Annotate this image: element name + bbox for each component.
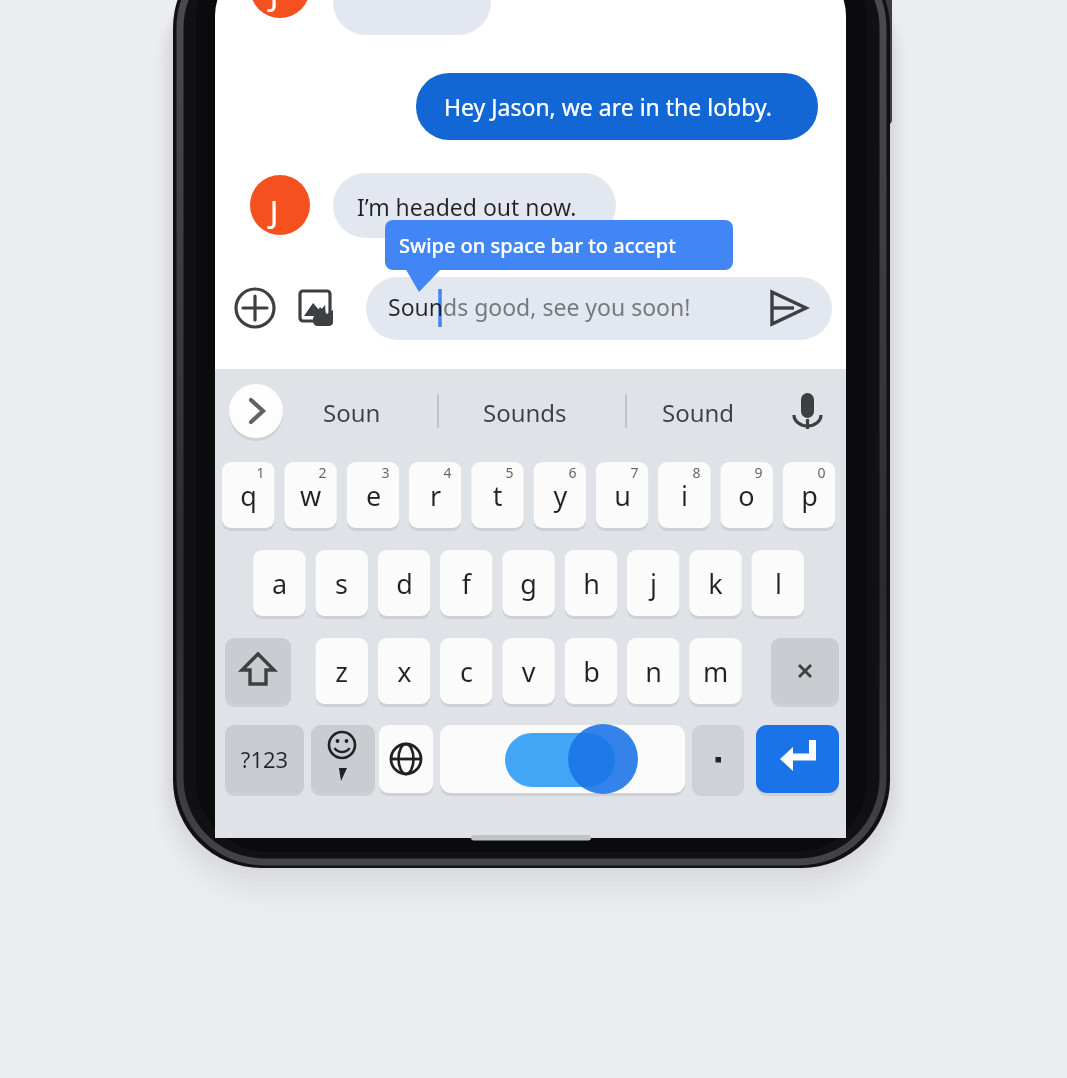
staticText: 0: [801, 463, 842, 485]
staticText: I’m headed out now.: [357, 191, 577, 222]
button[interactable]: [347, 462, 400, 528]
staticText: m: [689, 653, 742, 696]
staticText: e: [347, 477, 400, 520]
button[interactable]: [253, 550, 306, 616]
staticText: Soun: [323, 396, 381, 429]
staticText: 4: [427, 463, 468, 485]
button[interactable]: [627, 550, 680, 616]
staticText: r: [409, 477, 462, 520]
staticText: Sounds: [483, 396, 567, 429]
staticText: 5: [489, 463, 530, 485]
staticText: d: [378, 565, 431, 608]
button[interactable]: [440, 550, 493, 616]
button[interactable]: [689, 638, 742, 704]
staticText: Swipe on space bar to accept: [399, 232, 676, 259]
button[interactable]: [565, 638, 618, 704]
staticText: a: [253, 565, 306, 608]
staticText: ds good, see you soon!: [443, 291, 691, 322]
button[interactable]: [222, 462, 275, 528]
button[interactable]: [409, 462, 462, 528]
button[interactable]: Enter: [756, 725, 839, 793]
staticText: w: [284, 477, 337, 520]
button[interactable]: [448, 386, 608, 436]
button[interactable]: [440, 638, 493, 704]
button[interactable]: [471, 462, 524, 528]
button[interactable]: [502, 550, 555, 616]
staticText: j: [627, 565, 680, 608]
staticText: J: [270, 191, 279, 232]
button[interactable]: [689, 550, 742, 616]
button[interactable]: [783, 462, 836, 528]
staticText: k: [689, 565, 742, 608]
button[interactable]: [752, 550, 805, 616]
button[interactable]: Emoji: [311, 725, 375, 793]
staticText: q: [222, 477, 275, 520]
button[interactable]: [284, 462, 337, 528]
staticText: v: [502, 653, 555, 696]
staticText: ?123: [225, 744, 304, 779]
button[interactable]: Backspace: [771, 638, 839, 704]
button[interactable]: [225, 725, 304, 793]
button[interactable]: [627, 638, 680, 704]
button[interactable]: Period: [692, 725, 744, 793]
staticText: i: [658, 477, 711, 520]
button[interactable]: [565, 550, 618, 616]
button[interactable]: Change language: [379, 725, 433, 793]
button[interactable]: Space: [440, 725, 685, 793]
staticText: 3: [365, 463, 406, 485]
staticText: Soun: [388, 291, 443, 322]
button[interactable]: [502, 638, 555, 704]
button[interactable]: Expand suggestions: [229, 384, 283, 438]
button[interactable]: [378, 638, 431, 704]
button[interactable]: Send image: [296, 288, 338, 330]
button[interactable]: Message input: [366, 277, 786, 340]
staticText: o: [720, 477, 773, 520]
button[interactable]: Voice input: [786, 386, 832, 436]
button[interactable]: [378, 550, 431, 616]
button[interactable]: [534, 462, 587, 528]
staticText: 2: [302, 463, 343, 485]
staticText: 7: [614, 463, 655, 485]
staticText: 9: [738, 463, 779, 485]
staticText: l: [752, 565, 805, 608]
staticText: Sound: [662, 396, 735, 429]
button[interactable]: [640, 386, 780, 436]
button[interactable]: [596, 462, 649, 528]
staticText: n: [627, 653, 680, 696]
staticText: g: [502, 565, 555, 608]
button[interactable]: [658, 462, 711, 528]
staticText: s: [315, 565, 368, 608]
staticText: h: [565, 565, 618, 608]
button[interactable]: [300, 386, 430, 436]
staticText: p: [783, 477, 836, 520]
button[interactable]: Send: [768, 288, 810, 330]
staticText: f: [440, 565, 493, 608]
button[interactable]: [720, 462, 773, 528]
staticText: 1: [240, 463, 281, 485]
staticText: b: [565, 653, 618, 696]
staticText: J: [270, 0, 279, 15]
button[interactable]: [315, 550, 368, 616]
staticText: y: [534, 477, 587, 520]
staticText: x: [378, 653, 431, 696]
staticText: 6: [552, 463, 593, 485]
button[interactable]: Add attachment: [236, 289, 276, 329]
staticText: t: [471, 477, 524, 520]
staticText: c: [440, 653, 493, 696]
staticText: z: [315, 653, 368, 696]
button[interactable]: [315, 638, 368, 704]
button[interactable]: Shift: [225, 638, 291, 704]
staticText: 8: [676, 463, 717, 485]
staticText: u: [596, 477, 649, 520]
staticText: Hey Jason, we are in the lobby.: [444, 91, 772, 122]
